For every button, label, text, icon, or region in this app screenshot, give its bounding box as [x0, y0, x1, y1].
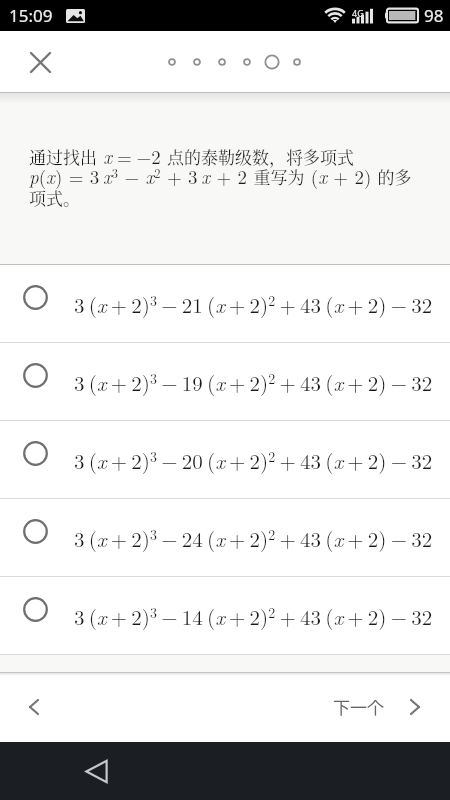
staticText: 3 (x + 2)3 − 20 (x + 2)2 + 43 (x + 2) − … [74, 445, 433, 475]
staticText: 3 (x + 2)3 − 19 (x + 2)2 + 43 (x + 2) − … [74, 367, 433, 397]
staticText: 3 (x + 2)3 − 14 (x + 2)2 + 43 (x + 2) − … [74, 601, 433, 631]
button[interactable]: 3 (x + 2)3 − 19 (x + 2)2 + 43 (x + 2) − … [0, 343, 450, 420]
staticText: 98 [424, 4, 444, 27]
button[interactable]: 下一个 [325, 684, 427, 729]
staticText: 通过找出 x = −2 点的泰勒级数，将多项式 [29, 143, 355, 170]
button[interactable]: Close [18, 40, 62, 84]
button[interactable]: 3 (x + 2)3 − 21 (x + 2)2 + 43 (x + 2) − … [0, 265, 450, 342]
button[interactable]: 3 (x + 2)3 − 20 (x + 2)2 + 43 (x + 2) − … [0, 421, 450, 498]
button[interactable]: Back [74, 749, 118, 793]
staticText: 项式。 [29, 185, 80, 209]
staticText: 3 (x + 2)3 − 24 (x + 2)2 + 43 (x + 2) − … [74, 523, 433, 553]
staticText: 3 (x + 2)3 − 21 (x + 2)2 + 43 (x + 2) − … [74, 289, 433, 319]
button[interactable]: 3 (x + 2)3 − 14 (x + 2)2 + 43 (x + 2) − … [0, 577, 450, 654]
button[interactable]: Previous [13, 686, 55, 728]
staticText: p(x) = 3 x3 − x2 + 3 x + 2 重写为 (x + 2) 的… [29, 163, 412, 190]
staticText: 15:09 [9, 4, 53, 27]
staticText: 下一个 [333, 694, 384, 719]
button[interactable]: 3 (x + 2)3 − 24 (x + 2)2 + 43 (x + 2) − … [0, 499, 450, 576]
staticText: 4G [352, 7, 364, 19]
